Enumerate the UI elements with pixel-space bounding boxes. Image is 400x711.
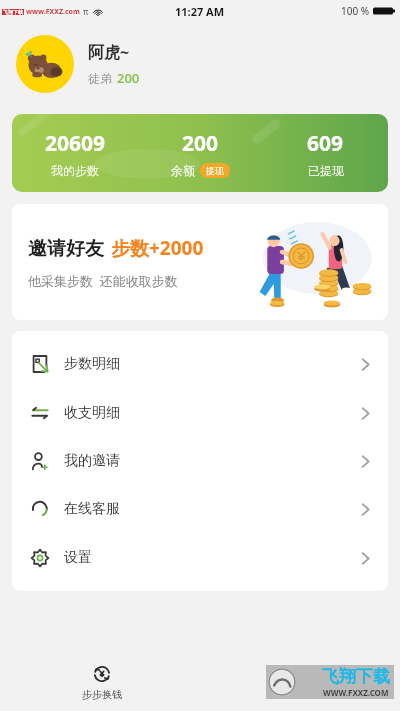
staticText: 步数+2000 xyxy=(111,235,204,261)
staticText: 余额 xyxy=(171,163,195,178)
staticText: 20609 xyxy=(45,129,106,158)
staticText: WWW.FXXZ.COM xyxy=(323,687,389,698)
staticText: 在线客服 xyxy=(64,500,120,518)
button[interactable]: 邀请好友 xyxy=(12,204,388,320)
staticText: 提现 xyxy=(206,165,224,176)
staticText: 我的邀请 xyxy=(64,452,120,470)
staticText: 100 % xyxy=(341,4,370,18)
staticText: π xyxy=(83,6,89,17)
staticText: 徒弟 xyxy=(88,71,112,86)
staticText: 设置 xyxy=(64,549,92,567)
staticText: 已提现 xyxy=(308,163,344,178)
staticText: 他采集步数 还能收取步数 xyxy=(28,272,178,290)
button[interactable]: 我的邀请 xyxy=(12,439,388,483)
staticText: 阿虎~ xyxy=(88,41,130,63)
button[interactable]: 提现 xyxy=(200,163,230,178)
staticText: 飞翔下载 xyxy=(322,666,390,687)
staticText: 200 xyxy=(182,129,219,158)
button[interactable]: 20609 xyxy=(12,114,388,192)
staticText: 邀请好友 xyxy=(28,237,104,261)
staticText: www.FXXZ.com xyxy=(26,7,80,17)
staticText: 11:27 AM xyxy=(175,4,225,19)
button[interactable]: 阿虎~ xyxy=(0,22,400,106)
staticText: 609 xyxy=(307,129,344,158)
staticText: 收支明细 xyxy=(64,404,120,422)
staticText: 飞翔下载 xyxy=(3,9,23,15)
staticText: 200 xyxy=(117,69,140,87)
staticText: 步数明细 xyxy=(64,355,120,373)
staticText: 步步换钱 xyxy=(82,688,122,701)
button[interactable]: 步数明细 xyxy=(12,342,388,386)
staticText: 我的步数 xyxy=(51,163,99,178)
button[interactable]: 步步换钱 xyxy=(78,660,126,705)
button[interactable]: 收支明细 xyxy=(12,391,388,435)
button[interactable]: 设置 xyxy=(12,536,388,580)
button[interactable]: 在线客服 xyxy=(12,487,388,531)
